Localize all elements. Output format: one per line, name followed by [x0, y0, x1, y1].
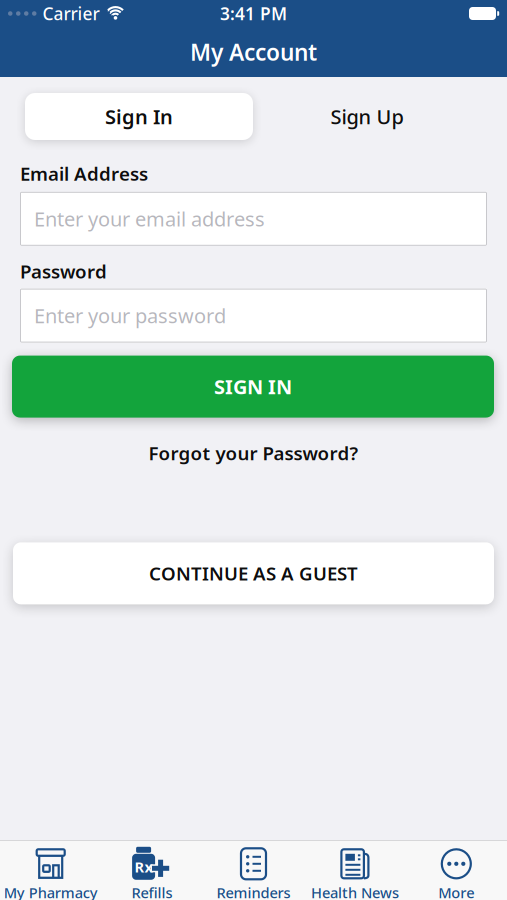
button[interactable]: CONTINUE AS A GUEST — [13, 542, 494, 604]
staticText: CONTINUE AS A GUEST — [149, 561, 358, 586]
staticText: Password — [20, 259, 107, 284]
staticText: Rx — [135, 857, 153, 877]
button[interactable]: Sign Up — [253, 93, 481, 140]
staticText: More — [438, 883, 474, 900]
staticText: Sign In — [105, 103, 173, 130]
staticText: 3:41 PM — [220, 2, 287, 25]
staticText: Forgot your Password? — [148, 441, 358, 465]
button[interactable]: My Pharmacy — [0, 847, 101, 900]
staticText: Sign Up — [330, 103, 403, 130]
staticText: Carrier — [42, 2, 99, 25]
staticText: My Pharmacy — [4, 883, 98, 900]
button[interactable]: Health News — [304, 847, 406, 900]
button[interactable]: Reminders — [203, 847, 304, 900]
staticText: My Account — [190, 37, 317, 67]
button[interactable]: Forgot your Password? — [0, 441, 507, 465]
button[interactable]: More — [406, 847, 507, 900]
staticText: Health News — [311, 883, 399, 900]
button[interactable]: Rx — [101, 847, 203, 900]
staticText: Enter your email address — [34, 205, 265, 232]
button[interactable]: Sign In — [25, 93, 253, 140]
staticText: Email Address — [20, 161, 148, 186]
button[interactable]: Email Address — [20, 192, 487, 246]
button[interactable]: SIGN IN — [12, 356, 494, 418]
staticText: Reminders — [216, 883, 290, 900]
button[interactable]: Password — [20, 289, 487, 343]
staticText: Refills — [132, 883, 173, 900]
staticText: SIGN IN — [214, 373, 292, 400]
staticText: Enter your password — [34, 302, 226, 329]
